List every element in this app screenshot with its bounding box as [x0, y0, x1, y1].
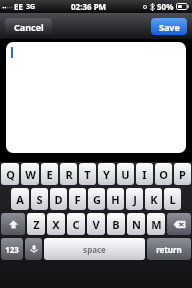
button[interactable]: O: [155, 163, 172, 185]
staticText: 3G: [26, 2, 36, 12]
button[interactable]: Cancel: [5, 18, 52, 35]
staticText: S: [36, 192, 43, 207]
staticText: R: [65, 167, 73, 182]
staticText: T: [84, 167, 91, 182]
staticText: Cancel: [14, 21, 44, 33]
button[interactable]: F: [69, 188, 86, 210]
staticText: P: [179, 167, 186, 182]
button[interactable]: H: [107, 188, 124, 210]
staticText: W: [25, 167, 36, 182]
button[interactable]: W: [21, 163, 39, 185]
staticText: Z: [33, 217, 40, 232]
staticText: Save: [159, 21, 180, 33]
staticText: M: [151, 217, 162, 232]
button[interactable]: N: [127, 213, 145, 235]
button[interactable]: L: [164, 188, 181, 210]
button[interactable]: Shift: [1, 213, 25, 235]
staticText: EE: [14, 1, 23, 12]
button[interactable]: return: [147, 238, 191, 260]
staticText: I: [142, 167, 147, 182]
staticText: B: [112, 217, 120, 232]
button[interactable]: Z: [27, 213, 45, 235]
staticText: E: [46, 167, 53, 182]
staticText: Y: [103, 167, 110, 182]
staticText: 02:36 PM: [71, 1, 107, 12]
staticText: U: [121, 167, 130, 182]
staticText: return: [156, 244, 182, 255]
staticText: L: [169, 192, 176, 207]
staticText: 123: [5, 244, 19, 255]
staticText: X: [52, 217, 60, 232]
button[interactable]: J: [126, 188, 143, 210]
button[interactable]: Dictate: [25, 238, 42, 260]
button[interactable]: P: [174, 163, 191, 185]
button[interactable]: V: [87, 213, 105, 235]
button[interactable]: G: [88, 188, 105, 210]
button[interactable]: R: [60, 163, 77, 185]
staticText: Q: [6, 167, 15, 182]
staticText: space: [83, 244, 106, 255]
button[interactable]: U: [117, 163, 134, 185]
staticText: C: [72, 217, 80, 232]
button[interactable]: Q: [1, 163, 19, 185]
button[interactable]: M: [147, 213, 165, 235]
button[interactable]: S: [31, 188, 48, 210]
button[interactable]: D: [50, 188, 67, 210]
button[interactable]: Y: [98, 163, 115, 185]
staticText: F: [74, 192, 81, 207]
staticText: H: [111, 192, 120, 207]
staticText: 50%: [157, 1, 174, 12]
staticText: A: [16, 192, 24, 207]
button[interactable]: X: [47, 213, 65, 235]
button[interactable]: E: [41, 163, 58, 185]
button[interactable]: 123: [1, 238, 23, 260]
staticText: K: [150, 192, 158, 207]
button[interactable]: Backspace: [167, 213, 191, 235]
staticText: O: [159, 167, 168, 182]
staticText: G: [93, 192, 101, 207]
button[interactable]: A: [11, 188, 29, 210]
button[interactable]: space: [44, 238, 145, 260]
button[interactable]: I: [136, 163, 153, 185]
staticText: N: [132, 217, 141, 232]
button[interactable]: C: [67, 213, 85, 235]
button[interactable]: K: [145, 188, 162, 210]
button[interactable]: B: [107, 213, 125, 235]
button[interactable]: [6, 42, 186, 153]
staticText: D: [54, 192, 63, 207]
button[interactable]: T: [79, 163, 96, 185]
button[interactable]: Save: [151, 18, 187, 35]
staticText: V: [92, 217, 100, 232]
staticText: J: [133, 192, 137, 207]
